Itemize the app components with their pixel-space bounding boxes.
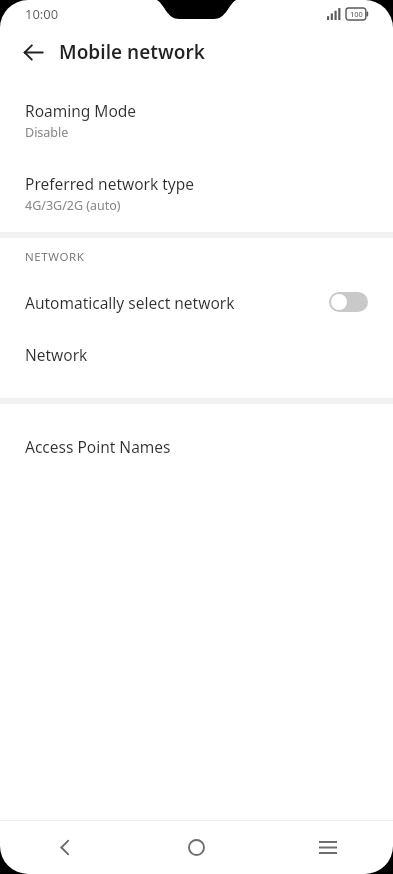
button[interactable]: Automatically select network	[0, 276, 393, 328]
staticText: 10:00	[25, 5, 59, 23]
staticText: Access Point Names	[25, 436, 171, 457]
staticText: 100	[350, 9, 363, 19]
button[interactable]: Access Point Names	[0, 420, 393, 472]
button[interactable]: Back	[0, 821, 131, 874]
button[interactable]: Roaming Mode	[0, 100, 393, 141]
button[interactable]: Recent apps	[262, 821, 393, 874]
staticText: Preferred network type	[25, 173, 195, 194]
staticText: Network	[25, 344, 88, 365]
staticText: Roaming Mode	[25, 100, 137, 121]
button[interactable]: Home	[131, 821, 262, 874]
button[interactable]: Network	[0, 328, 393, 380]
staticText: Automatically select network	[25, 292, 329, 313]
staticText: Mobile network	[59, 39, 205, 65]
staticText: NETWORK	[25, 249, 85, 265]
staticText: 4G/3G/2G (auto)	[25, 197, 121, 214]
button[interactable]: Back	[9, 28, 57, 76]
staticText: Disable	[25, 124, 69, 141]
button[interactable]: Preferred network type	[0, 173, 393, 214]
